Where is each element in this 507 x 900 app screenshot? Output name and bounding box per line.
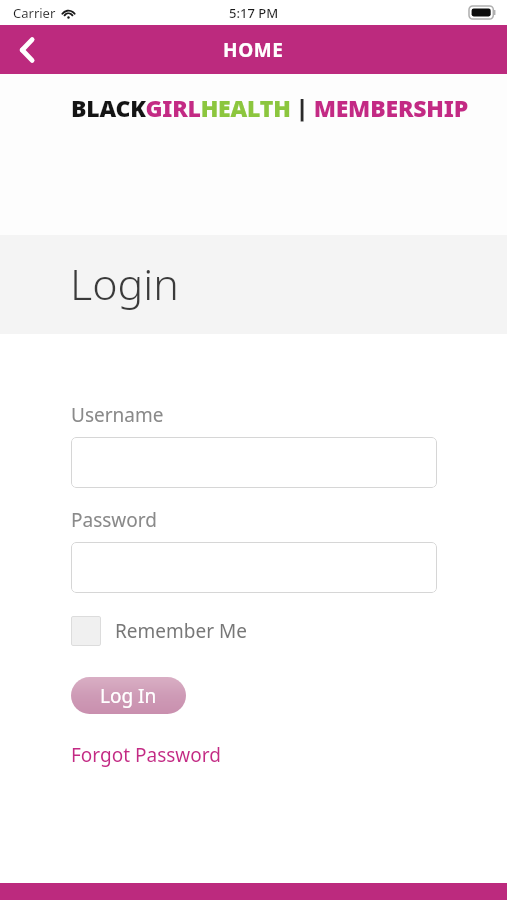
staticText: Username: [71, 402, 164, 428]
button[interactable]: Text input: [71, 437, 437, 488]
staticText: HOME: [223, 37, 284, 63]
button[interactable]: Forgot Password: [71, 742, 221, 768]
staticText: Password: [71, 507, 157, 533]
staticText: 5:17 PM: [229, 4, 279, 22]
button[interactable]: Text input: [71, 542, 437, 593]
button[interactable]: Remember Me: [71, 616, 247, 646]
staticText: Forgot Password: [71, 742, 221, 768]
staticText: Remember Me: [115, 618, 247, 644]
button[interactable]: Log In: [71, 677, 186, 714]
staticText: Carrier: [13, 4, 56, 22]
staticText: Login: [70, 254, 179, 313]
staticText: Log In: [100, 683, 157, 709]
staticText: BLACKGIRLHEALTH | MEMBERSHIP: [71, 92, 468, 123]
button[interactable]: Back: [0, 25, 54, 74]
